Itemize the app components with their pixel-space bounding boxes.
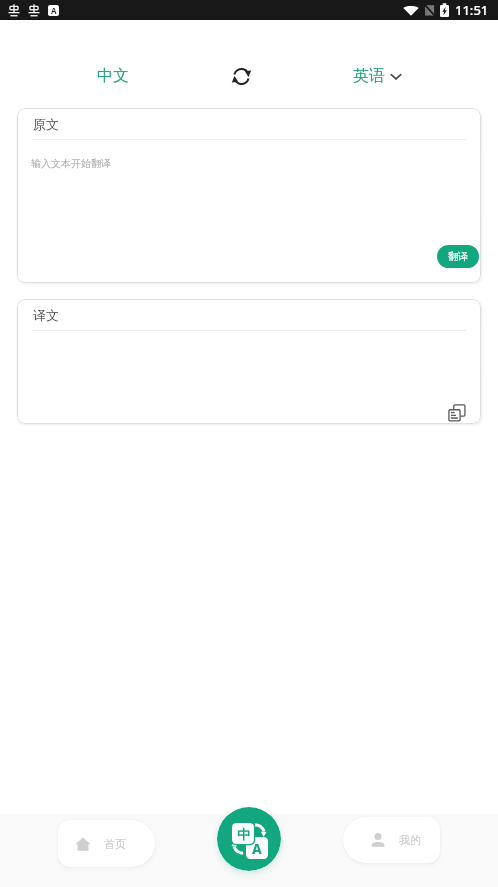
button[interactable]: Swap languages	[221, 56, 261, 96]
staticText: 中	[237, 826, 250, 842]
staticText: 译文	[33, 307, 59, 323]
button[interactable]: 首页	[58, 820, 155, 867]
staticText: 11:51	[455, 1, 489, 19]
staticText: 首页	[104, 837, 126, 851]
staticText: 英语	[353, 66, 385, 86]
staticText: 输入文本开始翻译	[31, 157, 111, 170]
button[interactable]: Translate	[217, 807, 281, 871]
button[interactable]: Copy	[446, 402, 468, 424]
button[interactable]: 翻译	[437, 245, 479, 268]
button[interactable]: 我的	[343, 817, 440, 863]
staticText: 原文	[33, 116, 59, 132]
staticText: 中文	[97, 66, 129, 86]
staticText: 我的	[399, 833, 421, 847]
button[interactable]: 中文	[73, 52, 153, 100]
button[interactable]: 英语	[337, 52, 419, 100]
staticText: A	[252, 839, 262, 858]
staticText: A	[51, 5, 57, 16]
staticText: 翻译	[448, 250, 468, 263]
